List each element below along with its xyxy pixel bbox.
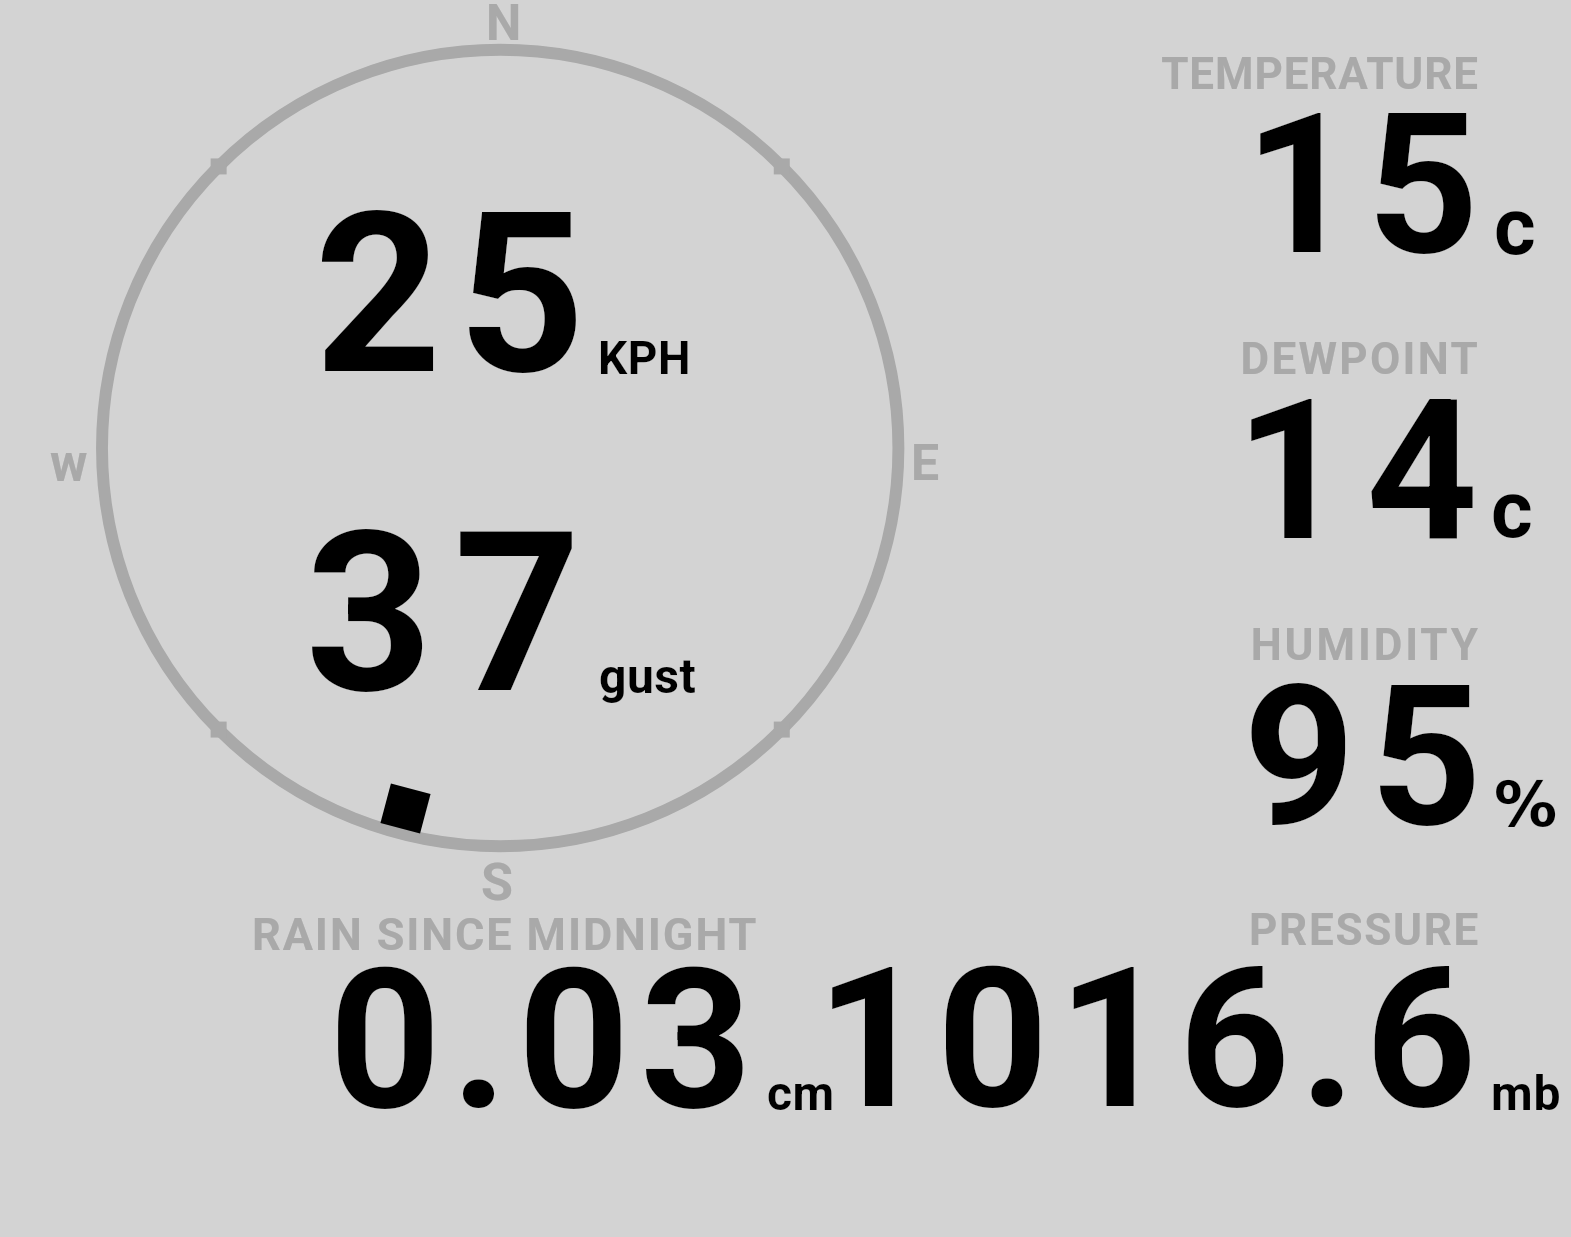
- staticText: KPH: [598, 331, 692, 385]
- staticText: N: [486, 0, 522, 53]
- staticText: gust: [599, 648, 697, 704]
- staticText: %: [1494, 768, 1558, 841]
- staticText: c: [1494, 180, 1536, 274]
- staticText: 14: [0, 357, 1497, 650]
- button[interactable]: Wind 25 KPH, gust 37: [96, 44, 906, 854]
- button[interactable]: Pressure 1016.6 mb: [852, 905, 1567, 1120]
- button[interactable]: Rain since midnight 0.03 cm: [250, 905, 850, 1120]
- staticText: E: [911, 434, 940, 493]
- staticText: 95: [0, 643, 1497, 936]
- staticText: 37: [0, 484, 602, 817]
- staticText: DEWPOINT: [0, 333, 1480, 399]
- button[interactable]: Temperature 15 c: [1160, 50, 1560, 265]
- staticText: TEMPERATURE: [0, 48, 1479, 114]
- staticText: w: [50, 434, 88, 494]
- staticText: 1016.6: [0, 926, 1486, 1217]
- staticText: PRESSURE: [0, 904, 1480, 970]
- staticText: mb: [1491, 1065, 1562, 1121]
- staticText: S: [481, 852, 514, 913]
- staticText: HUMIDITY: [0, 619, 1481, 685]
- staticText: RAIN SINCE MIDNIGHT: [252, 908, 759, 961]
- staticText: 0.03: [0, 926, 762, 1219]
- staticText: 25: [0, 165, 601, 498]
- staticText: c: [1491, 463, 1533, 557]
- button[interactable]: Humidity 95 percent: [1160, 620, 1560, 835]
- button[interactable]: Dewpoint 14 c: [1160, 335, 1560, 550]
- staticText: 15: [0, 71, 1490, 364]
- staticText: cm: [767, 1065, 835, 1121]
- button[interactable]: Wind direction, south south west: [380, 783, 430, 833]
